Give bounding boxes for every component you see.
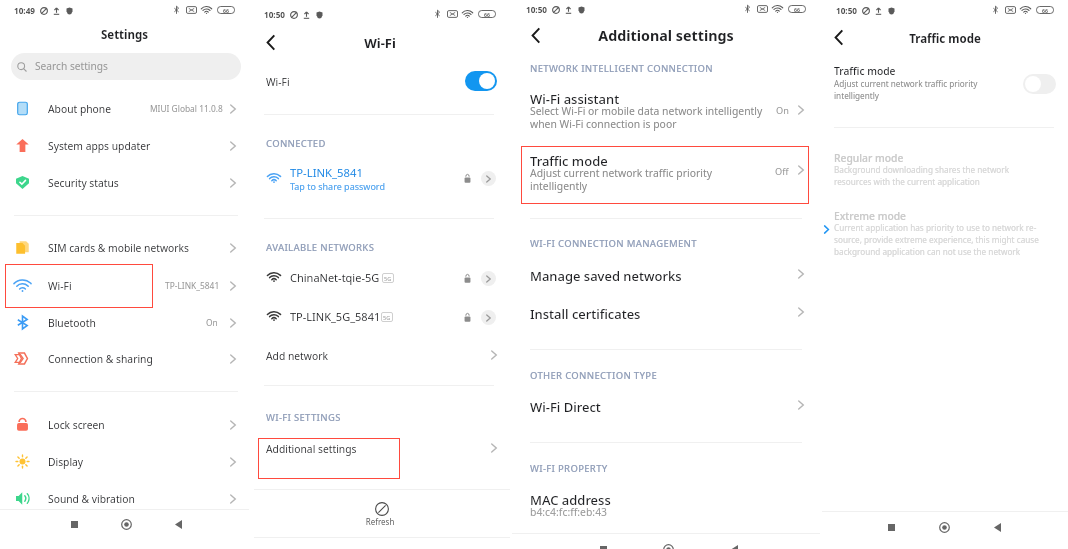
button[interactable] [522,258,810,290]
staticText: Install certificates [530,305,641,323]
staticText: Off [775,165,789,178]
button[interactable] [5,341,244,377]
staticText: WI-FI SETTINGS [266,411,341,424]
staticText: 10:49 [14,5,36,16]
button[interactable] [5,91,244,127]
staticText: Wi-Fi Direct [530,398,601,416]
button[interactable] [5,165,244,201]
button[interactable]: Back [829,28,847,46]
staticText: Select Wi-Fi or mobile data network inte… [530,104,780,131]
staticText: Current application has priority to use … [834,222,1066,257]
staticText: MIUI Global 11.0.8 [150,103,223,114]
staticText: Traffic mode [530,152,608,170]
staticText: 10:50 [264,9,286,20]
staticText: 5G [383,314,391,321]
button[interactable] [828,148,1062,190]
staticText: SIM cards & mobile networks [48,241,189,255]
staticText: Refresh [358,516,402,527]
staticText: Background downloading shares the networ… [834,164,1066,187]
staticText: Wi-Fi [266,75,290,89]
button[interactable] [522,389,810,421]
button[interactable]: Search settings [11,53,241,80]
staticText: Connection & sharing [48,352,153,366]
button[interactable] [358,498,402,530]
button[interactable] [522,148,810,190]
button[interactable] [258,435,502,467]
staticText: About phone [48,102,111,116]
button[interactable] [5,305,244,341]
staticText: Manage saved networks [530,267,682,285]
staticText: Additional settings [266,442,357,456]
button[interactable] [5,230,244,266]
staticText: NETWORK INTELLIGENT CONNECTION [530,62,713,75]
staticText: WI-FI CONNECTION MANAGEMENT [530,237,697,250]
button[interactable] [5,444,244,480]
button[interactable] [258,262,502,294]
staticText: b4:c4:fc:ff:eb:43 [530,505,608,519]
staticText: Search settings [35,59,108,73]
staticText: CONNECTED [266,137,326,150]
button[interactable] [258,162,502,198]
staticText: Extreme mode [834,209,907,223]
staticText: Regular mode [834,151,904,165]
button[interactable] [5,268,244,304]
staticText: System apps updater [48,139,151,153]
staticText: OTHER CONNECTION TYPE [530,369,657,382]
staticText: TP-LINK_5G_5841 [290,309,381,324]
staticText: Wi-Fi [250,34,510,52]
button[interactable] [5,407,244,443]
staticText: Adjust current network traffic priority … [530,166,780,193]
button[interactable]: Home [936,519,952,535]
staticText: 66 [484,11,490,18]
staticText: Adjust current network traffic priority … [834,78,1034,101]
staticText: Settings [0,27,249,43]
button[interactable] [258,301,502,333]
staticText: Bluetooth [48,316,96,330]
staticText: 10:50 [526,4,548,15]
staticText: On [776,104,789,117]
staticText: MAC address [530,491,611,509]
staticText: 66 [794,6,800,13]
staticText: ChinaNet-tqie-5G [290,270,380,285]
button[interactable] [828,62,1062,104]
staticText: On [206,317,218,328]
button[interactable]: Home [118,516,134,532]
button[interactable]: Recents [596,542,610,549]
button[interactable] [522,296,810,328]
button[interactable] [522,487,810,517]
staticText: Sound & vibration [48,492,135,506]
button[interactable]: Back [261,33,279,51]
staticText: TP-LINK_5841 [165,280,220,291]
staticText: 66 [1042,7,1048,14]
button[interactable]: Back [171,517,185,531]
staticText: Tap to share password [290,180,385,192]
button[interactable]: Back [990,520,1004,534]
button[interactable] [258,340,502,370]
staticText: 5G [384,275,392,282]
button[interactable]: Back [727,542,741,549]
staticText: Display [48,455,84,469]
button[interactable] [828,205,1062,255]
staticText: AVAILABLE NETWORKS [266,241,375,254]
staticText: Wi-Fi [48,279,72,293]
button[interactable]: Recents [884,520,898,534]
staticText: Wi-Fi assistant [530,90,620,108]
staticText: Additional settings [512,26,820,45]
staticText: 10:50 [836,5,858,16]
button[interactable]: Home [660,541,676,549]
staticText: Add network [266,349,328,363]
staticText: TP-LINK_5841 [290,165,363,180]
button[interactable] [5,481,244,517]
button[interactable] [258,66,502,98]
staticText: 66 [223,7,229,14]
staticText: WI-FI PROPERTY [530,462,608,475]
staticText: Traffic mode [834,64,896,78]
button[interactable]: Recents [67,517,81,531]
button[interactable] [522,88,810,130]
button[interactable] [5,128,244,164]
staticText: Security status [48,176,119,190]
staticText: Lock screen [48,418,105,432]
staticText: Traffic mode [822,31,1068,47]
button[interactable]: Back [526,26,544,44]
